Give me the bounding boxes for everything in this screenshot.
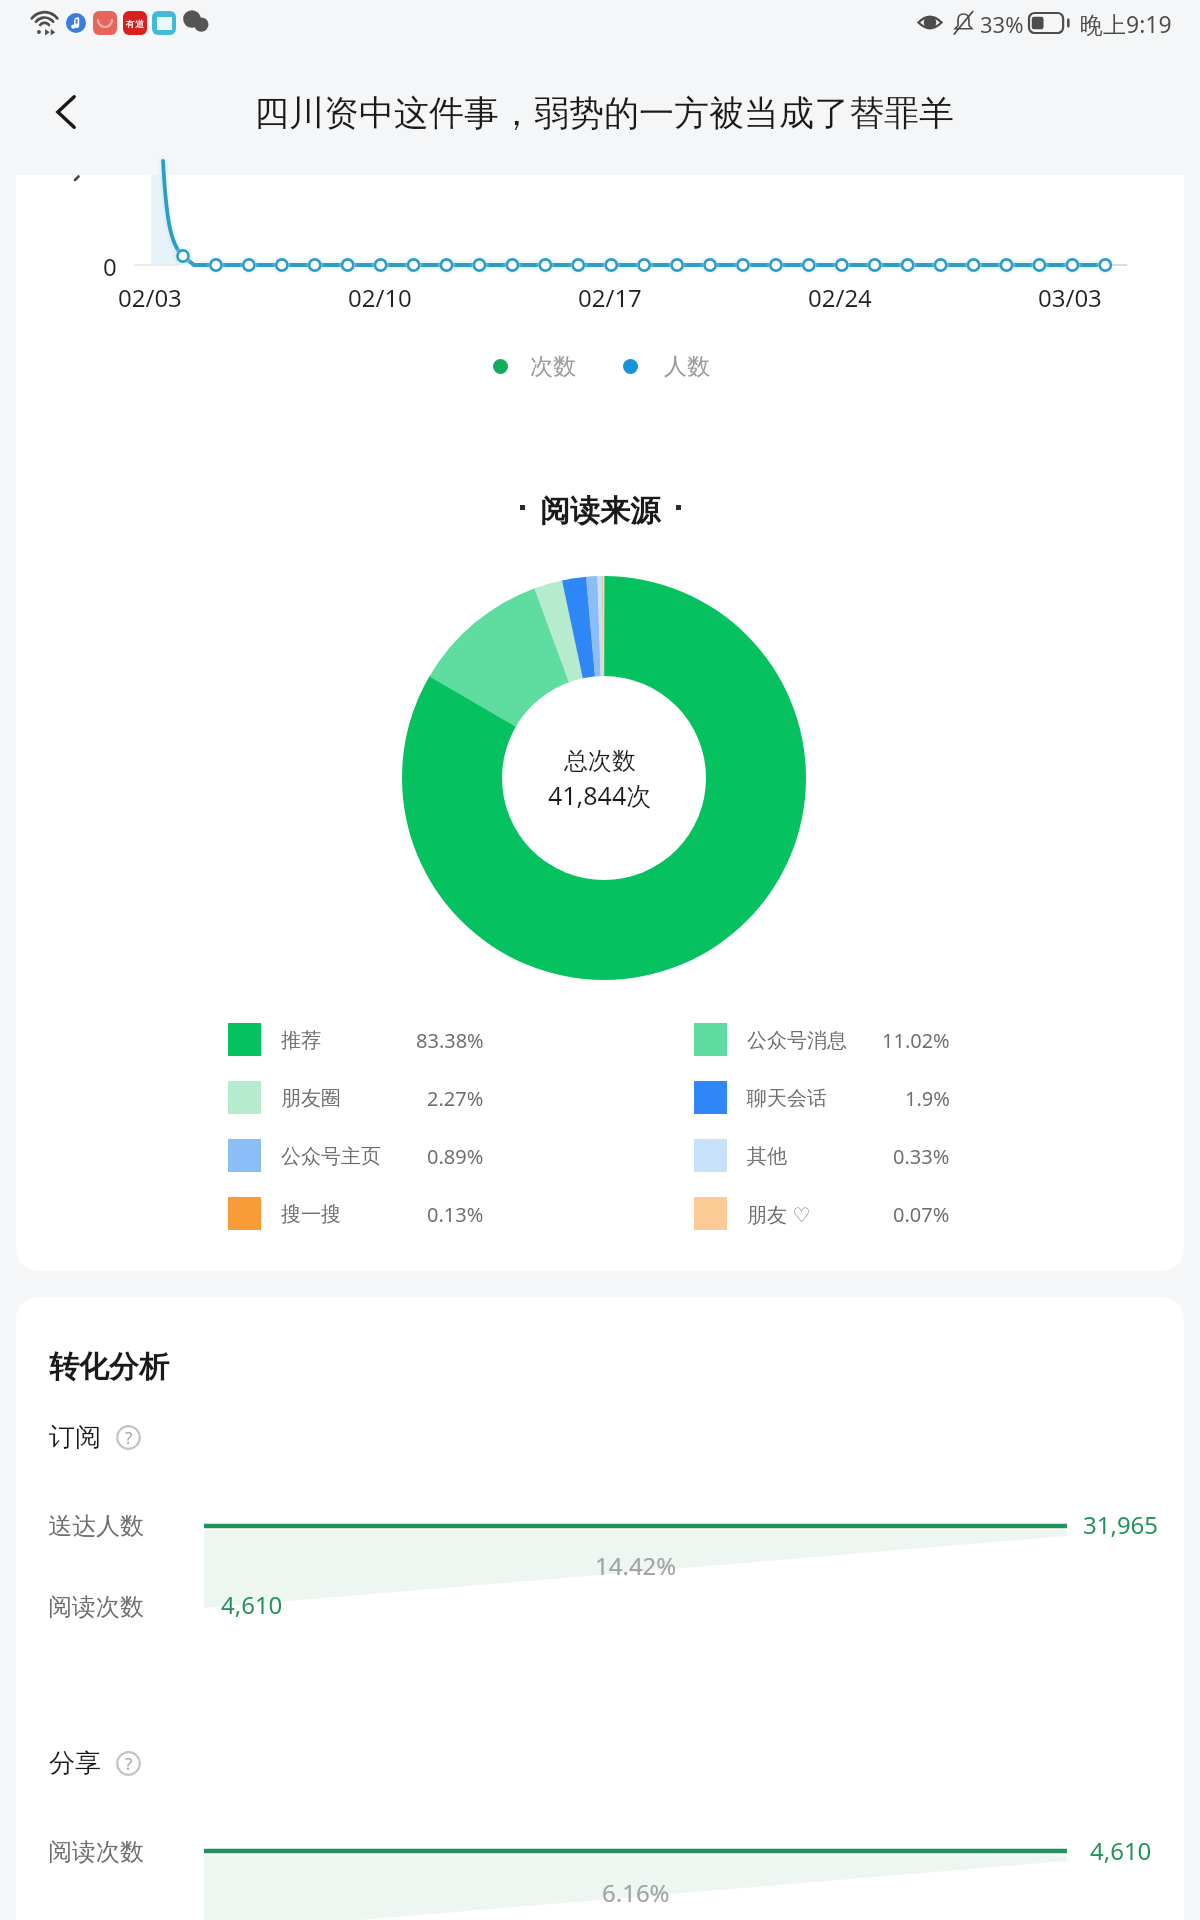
- staticText: 31,965: [1083, 1508, 1159, 1541]
- staticText: 四川资中这件事，弱势的一方被当成了替罪羊: [254, 91, 954, 135]
- button[interactable]: [618, 350, 714, 384]
- staticText: 4,610: [1090, 1834, 1152, 1867]
- staticText: 晚上9:19: [1080, 8, 1172, 39]
- button[interactable]: [220, 1127, 492, 1183]
- staticText: 其他: [747, 1144, 787, 1169]
- staticText: 搜一搜: [281, 1202, 341, 1227]
- staticText: 总次数: [564, 746, 636, 776]
- button[interactable]: [686, 1185, 958, 1241]
- staticText: 转化分析: [49, 1348, 169, 1386]
- staticText: 人数: [664, 352, 710, 381]
- button[interactable]: Help: [112, 1421, 145, 1454]
- button[interactable]: [686, 1069, 958, 1125]
- staticText: 分享: [49, 1747, 101, 1780]
- button[interactable]: [686, 1011, 958, 1067]
- staticText: 2.27%: [427, 1085, 484, 1112]
- staticText: 阅读次数: [48, 1837, 144, 1867]
- staticText: 送达人数: [48, 1511, 144, 1541]
- staticText: 1.9%: [905, 1085, 950, 1112]
- staticText: ?: [125, 1426, 133, 1449]
- staticText: 0.33%: [893, 1143, 950, 1170]
- staticText: 02/17: [578, 281, 642, 314]
- button[interactable]: [220, 1185, 492, 1241]
- staticText: 41,844次: [548, 778, 652, 812]
- staticText: 0.07%: [893, 1201, 950, 1228]
- button[interactable]: Back: [26, 72, 106, 152]
- staticText: 83.38%: [416, 1027, 484, 1054]
- staticText: 33%: [980, 9, 1024, 39]
- staticText: 阅读来源: [540, 492, 660, 530]
- staticText: ?: [125, 1752, 133, 1775]
- staticText: 11.02%: [882, 1027, 950, 1054]
- staticText: 6.16%: [602, 1876, 670, 1909]
- staticText: 有道: [126, 18, 144, 29]
- staticText: 阅读次数: [48, 1592, 144, 1622]
- button[interactable]: Help: [112, 1747, 145, 1780]
- staticText: 0: [103, 250, 117, 283]
- staticText: 朋友圈: [281, 1086, 341, 1111]
- staticText: 4,610: [221, 1588, 283, 1621]
- button[interactable]: [686, 1127, 958, 1183]
- button[interactable]: [488, 350, 580, 384]
- staticText: 公众号主页: [281, 1144, 381, 1169]
- staticText: 推荐: [281, 1028, 321, 1053]
- staticText: 03/03: [1038, 281, 1102, 314]
- staticText: 聊天会话: [747, 1086, 827, 1111]
- staticText: 次数: [530, 352, 576, 381]
- staticText: 14.42%: [595, 1549, 677, 1582]
- staticText: 公众号消息: [747, 1028, 847, 1053]
- staticText: 02/24: [808, 281, 872, 314]
- staticText: 订阅: [49, 1421, 101, 1454]
- button[interactable]: [220, 1069, 492, 1125]
- staticText: 02/03: [118, 281, 182, 314]
- button[interactable]: [220, 1011, 492, 1067]
- staticText: 0.13%: [427, 1201, 484, 1228]
- staticText: 朋友 ♡: [747, 1201, 811, 1228]
- staticText: 0.89%: [427, 1143, 484, 1170]
- staticText: 02/10: [348, 281, 412, 314]
